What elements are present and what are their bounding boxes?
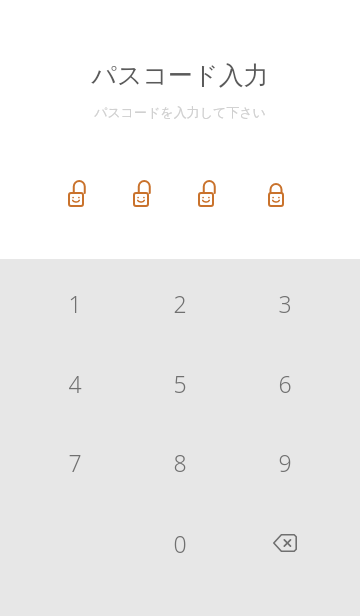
staticText: 6 [278,368,292,399]
button[interactable]: 9 [245,432,325,492]
button[interactable]: 8 [140,432,220,492]
staticText: 4 [68,368,82,399]
staticText: 2 [173,288,187,319]
staticText: 8 [173,447,187,478]
button[interactable]: 7 [35,432,115,492]
staticText: パスコードを入力して下さい [94,104,266,120]
button[interactable]: 5 [140,353,220,413]
staticText: パスコード入力 [91,60,269,91]
button[interactable]: Backspace [250,515,320,571]
staticText: 9 [278,447,292,478]
staticText: 0 [173,528,187,559]
staticText: 1 [68,288,82,319]
button[interactable]: 4 [35,353,115,413]
button[interactable]: 6 [245,353,325,413]
button[interactable]: 0 [140,513,220,573]
button[interactable]: 3 [245,273,325,333]
staticText: 5 [173,368,187,399]
button[interactable]: 1 [35,273,115,333]
staticText: 7 [68,447,82,478]
staticText: 3 [278,288,292,319]
button[interactable]: 2 [140,273,220,333]
